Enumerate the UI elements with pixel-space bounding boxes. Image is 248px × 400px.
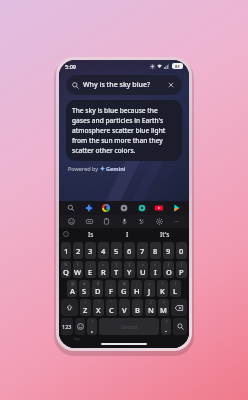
button[interactable]: Maps <box>136 202 148 214</box>
staticText: | <box>89 262 92 267</box>
button[interactable]: 123 <box>61 318 73 335</box>
button[interactable]: ) <box>170 280 181 297</box>
button[interactable]: More options <box>171 216 182 227</box>
button[interactable]: _ <box>105 280 116 297</box>
staticText: Why is the sky blue? <box>83 80 151 90</box>
staticText: 1 <box>64 246 69 256</box>
staticText: It's <box>160 230 170 239</box>
staticText: , <box>91 324 94 334</box>
button[interactable]: Powered by <box>68 165 126 172</box>
button[interactable]: Google <box>100 202 112 214</box>
button[interactable]: > <box>150 261 161 278</box>
button[interactable]: + <box>144 280 155 297</box>
button[interactable]: 9 <box>163 242 174 259</box>
staticText: + <box>148 281 151 286</box>
staticText: H <box>134 286 140 296</box>
button[interactable]: \ <box>73 261 83 278</box>
button[interactable]: Gemini <box>83 202 95 214</box>
staticText: % <box>64 262 68 267</box>
button[interactable]: " <box>93 299 104 316</box>
staticText: ' <box>111 300 112 305</box>
staticText: Q <box>63 267 69 277</box>
staticText: Is <box>88 230 94 239</box>
staticText: ! <box>85 300 87 305</box>
button[interactable]: Play Store <box>171 202 183 214</box>
staticText: { <box>168 262 170 267</box>
button[interactable]: % <box>61 261 71 278</box>
staticText: F <box>109 286 113 296</box>
button[interactable]: # <box>79 280 90 297</box>
button[interactable]: 2 <box>73 242 83 259</box>
button[interactable]: : <box>119 299 130 316</box>
button[interactable]: & <box>118 280 129 297</box>
button[interactable]: 3 <box>85 242 96 259</box>
staticText: . <box>165 324 168 334</box>
staticText: The sky is blue because the gases and pa… <box>72 106 176 155</box>
button[interactable]: } <box>176 261 187 278</box>
staticText: L <box>173 286 178 296</box>
button[interactable]: Emoji <box>75 318 85 335</box>
button[interactable]: Clear <box>166 80 176 90</box>
staticText: 123 <box>62 323 72 330</box>
button[interactable]: GIF <box>84 216 95 227</box>
button[interactable]: / <box>145 299 156 316</box>
button[interactable]: 1 <box>61 242 71 259</box>
button[interactable]: ] <box>124 261 135 278</box>
button[interactable]: | <box>85 261 96 278</box>
button[interactable]: { <box>163 261 174 278</box>
button[interactable]: YouTube <box>153 202 165 214</box>
button[interactable]: Is <box>73 228 109 240</box>
button[interactable]: Voice input <box>119 216 130 227</box>
button[interactable]: Search <box>173 318 187 335</box>
button[interactable]: 8 <box>150 242 161 259</box>
button[interactable]: Space <box>99 318 159 335</box>
staticText: _ <box>110 281 112 286</box>
staticText: 3 <box>88 246 93 256</box>
button[interactable]: Suggestions <box>59 228 73 240</box>
button[interactable]: [ <box>111 261 122 278</box>
button[interactable]: 5 <box>111 242 122 259</box>
button[interactable]: - <box>131 280 142 297</box>
button[interactable]: ; <box>132 299 143 316</box>
button[interactable]: Search <box>66 75 182 95</box>
button[interactable]: Assistant <box>118 202 130 214</box>
button[interactable]: ! <box>80 299 91 316</box>
button[interactable]: Search <box>65 202 77 214</box>
staticText: V <box>122 305 127 315</box>
button[interactable]: Shift <box>61 299 78 316</box>
button[interactable]: ? <box>158 299 169 316</box>
button[interactable]: The sky is blue because the gases and pa… <box>66 100 182 161</box>
staticText: Gemini <box>106 165 126 172</box>
staticText: M <box>160 305 167 315</box>
button[interactable]: Settings <box>154 216 165 227</box>
button[interactable]: Translate <box>136 216 147 227</box>
button[interactable]: ? <box>161 318 171 335</box>
staticText: Y <box>127 267 132 277</box>
staticText: O <box>166 267 172 277</box>
other: Search <box>72 82 79 89</box>
button[interactable]: Emoji <box>66 216 77 227</box>
button[interactable]: 6 <box>124 242 135 259</box>
button[interactable]: I <box>109 228 146 240</box>
button[interactable]: 7 <box>137 242 148 259</box>
button[interactable]: Backspace <box>171 299 187 316</box>
button[interactable]: 4 <box>98 242 109 259</box>
button[interactable]: ! <box>87 318 97 335</box>
button[interactable]: $ <box>92 280 103 297</box>
button[interactable]: Clipboard <box>101 216 112 227</box>
staticText: ; <box>137 300 139 305</box>
button[interactable]: ( <box>157 280 168 297</box>
staticText: } <box>181 262 183 267</box>
button[interactable]: @ <box>67 280 77 297</box>
button[interactable]: ' <box>106 299 117 316</box>
staticText: = <box>102 262 105 267</box>
button[interactable]: < <box>137 261 148 278</box>
button[interactable]: = <box>98 261 109 278</box>
button[interactable]: It's <box>146 228 183 240</box>
staticText: U <box>140 267 146 277</box>
button[interactable]: 0 <box>176 242 187 259</box>
staticText: 5:09 <box>65 63 76 70</box>
staticText: # <box>83 281 86 286</box>
staticText: : <box>124 300 126 305</box>
staticText: 0 <box>179 246 184 256</box>
